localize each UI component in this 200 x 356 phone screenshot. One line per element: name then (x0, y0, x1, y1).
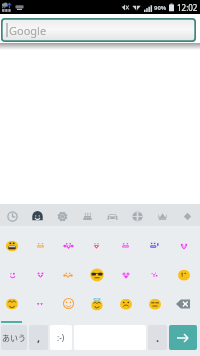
button[interactable]: Google (1, 18, 196, 42)
button[interactable]: Objects (150, 204, 175, 226)
button[interactable]: あいう (1, 325, 27, 350)
button[interactable]: Travel (100, 204, 125, 226)
button[interactable]: Enter (169, 325, 197, 350)
button[interactable] (82, 289, 111, 318)
staticText: 90% (154, 4, 167, 12)
button[interactable]: Nature (50, 204, 75, 226)
button[interactable] (140, 289, 169, 318)
button[interactable] (0, 231, 26, 260)
button[interactable]: Symbols (175, 204, 200, 226)
button[interactable] (0, 260, 26, 289)
button[interactable] (169, 231, 198, 260)
button[interactable] (169, 260, 198, 289)
button[interactable] (140, 260, 169, 289)
button[interactable] (54, 260, 82, 289)
staticText: , (37, 330, 41, 345)
staticText: あいう (2, 332, 26, 344)
button[interactable] (111, 289, 140, 318)
button[interactable] (26, 260, 54, 289)
button[interactable] (0, 289, 26, 318)
button[interactable] (82, 231, 111, 260)
button[interactable] (140, 231, 169, 260)
button[interactable]: , (29, 325, 48, 350)
button[interactable] (82, 260, 111, 289)
button[interactable] (26, 231, 54, 260)
button[interactable]: Sports (125, 204, 150, 226)
staticText: . (156, 330, 160, 345)
button[interactable]: Celebration (75, 204, 100, 226)
button[interactable] (26, 289, 54, 318)
button[interactable]: Backspace (169, 289, 198, 318)
button[interactable] (111, 231, 140, 260)
button[interactable] (54, 289, 82, 318)
button[interactable]: Smileys (25, 204, 50, 226)
staticText: Google (9, 23, 47, 38)
button[interactable]: . (148, 325, 167, 350)
button[interactable]: :-) (50, 325, 72, 350)
button[interactable] (54, 231, 82, 260)
other: Backspace (176, 299, 191, 309)
button[interactable] (111, 260, 140, 289)
staticText: 12:02 (177, 2, 198, 13)
button[interactable]: Recent (0, 204, 25, 226)
staticText: :-) (57, 332, 65, 343)
